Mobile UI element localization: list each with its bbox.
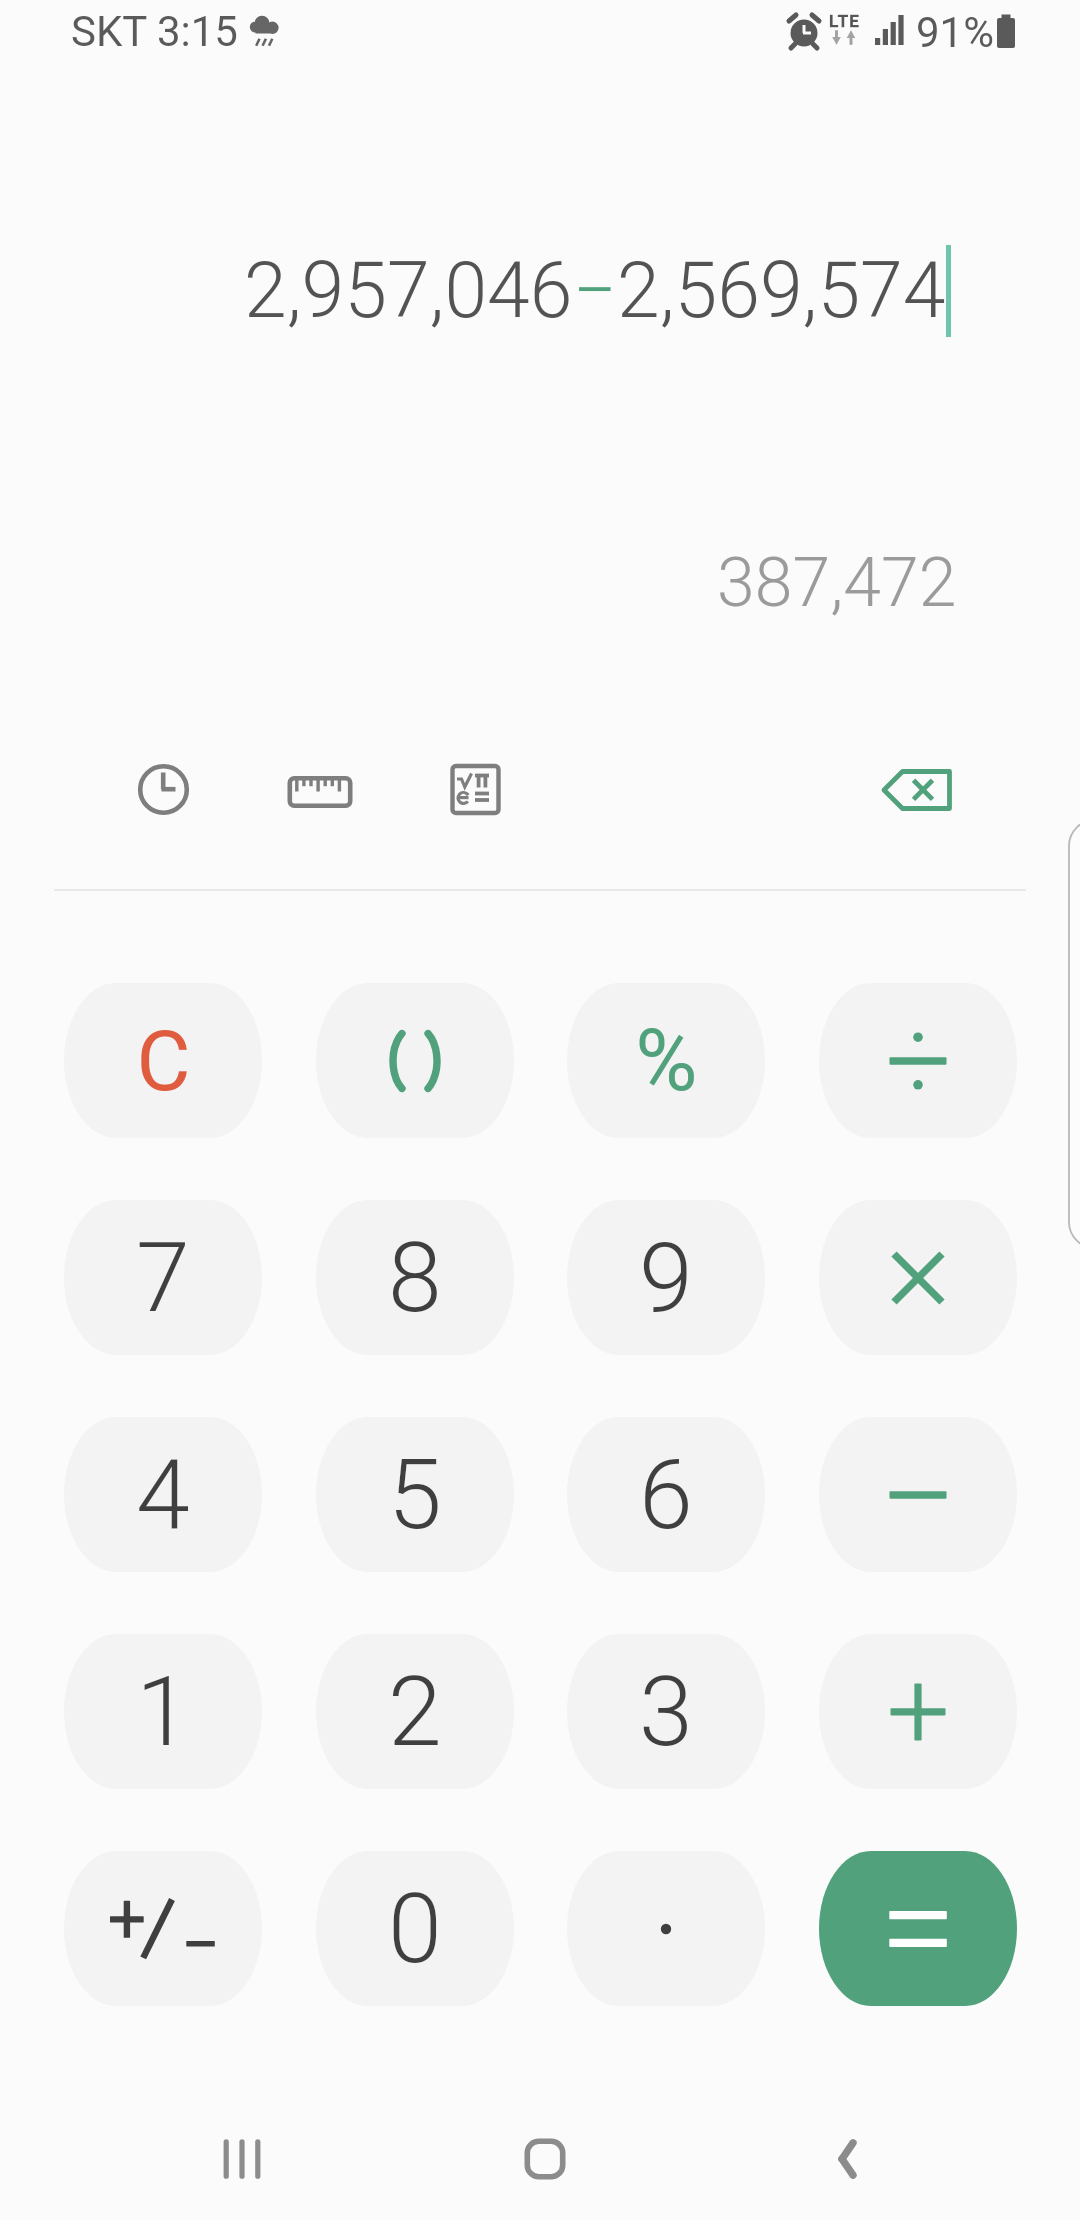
button[interactable]: Equals xyxy=(819,1851,1017,2006)
button[interactable]: Backspace xyxy=(864,736,971,843)
button[interactable]: Recent apps xyxy=(183,2099,303,2219)
staticText: 6 xyxy=(639,1438,693,1552)
button[interactable]: Plus minus xyxy=(64,1851,262,2006)
staticText: − xyxy=(573,246,617,336)
button[interactable]: Parentheses xyxy=(316,983,514,1138)
button[interactable]: 3 xyxy=(567,1634,765,1789)
button[interactable]: 6 xyxy=(567,1417,765,1572)
button[interactable]: Back xyxy=(788,2099,908,2219)
button[interactable]: Multiply xyxy=(819,1200,1017,1355)
staticText: 8 xyxy=(388,1221,442,1335)
staticText: 91% xyxy=(916,8,994,57)
button[interactable]: Decimal point xyxy=(567,1851,765,2006)
button[interactable]: 5 xyxy=(316,1417,514,1572)
staticText: 2,569,574 xyxy=(617,246,946,336)
staticText: 1 xyxy=(136,1655,190,1769)
button[interactable]: 9 xyxy=(567,1200,765,1355)
button[interactable]: 0 xyxy=(316,1851,514,2006)
button[interactable]: Home xyxy=(485,2099,605,2219)
staticText: 387,472 xyxy=(717,543,957,623)
staticText: 2 xyxy=(388,1655,442,1769)
button[interactable]: 2 xyxy=(316,1634,514,1789)
staticText: % xyxy=(635,1011,698,1111)
button[interactable]: Add xyxy=(819,1634,1017,1789)
staticText: 9 xyxy=(639,1221,693,1335)
button[interactable]: Scientific calculator xyxy=(422,736,529,843)
button[interactable]: History xyxy=(110,736,217,843)
staticText: 5 xyxy=(388,1438,442,1552)
staticText: 0 xyxy=(388,1872,442,1986)
button[interactable]: C xyxy=(64,983,262,1138)
button[interactable]: Divide xyxy=(819,983,1017,1138)
staticText: LTE xyxy=(829,11,861,31)
staticText: 7 xyxy=(136,1221,190,1335)
staticText: 3 xyxy=(639,1655,693,1769)
staticText: SKT 3:15 xyxy=(71,7,238,56)
button[interactable]: 1 xyxy=(64,1634,262,1789)
staticText: C xyxy=(136,1013,191,1110)
button[interactable]: 7 xyxy=(64,1200,262,1355)
button[interactable]: 8 xyxy=(316,1200,514,1355)
staticText: 4 xyxy=(136,1438,190,1552)
button[interactable]: Unit converter xyxy=(266,736,373,843)
button[interactable]: Subtract xyxy=(819,1417,1017,1572)
staticText: 2,957,046 xyxy=(244,246,573,336)
button[interactable]: 4 xyxy=(64,1417,262,1572)
button[interactable]: % xyxy=(567,983,765,1138)
